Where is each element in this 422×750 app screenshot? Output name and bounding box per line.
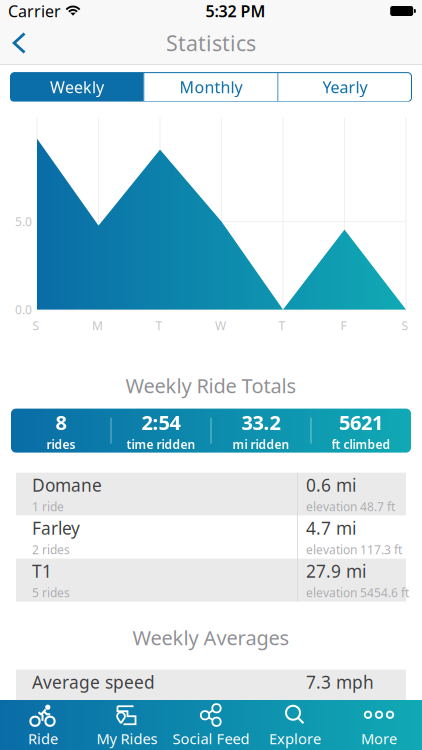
staticText: T — [155, 318, 162, 333]
staticText: F — [340, 318, 346, 333]
staticText: 5.0 — [15, 214, 32, 229]
button[interactable]: My Rides — [85, 700, 169, 750]
staticText: elevation 5454.6 ft — [306, 585, 409, 600]
staticText: 33.2 — [241, 409, 280, 435]
button[interactable]: More — [337, 700, 421, 750]
staticText: W — [215, 318, 226, 333]
staticText: Explore — [269, 729, 321, 748]
staticText: 4.7 mi — [306, 517, 356, 540]
staticText: elevation 117.3 ft — [306, 542, 402, 557]
staticText: Farley — [32, 517, 80, 540]
button[interactable]: Explore — [253, 700, 337, 750]
button[interactable]: Ride — [1, 700, 85, 750]
staticText: elevation 48.7 ft — [306, 499, 395, 514]
staticText: Monthly — [179, 76, 242, 98]
staticText: T1 — [32, 560, 52, 583]
button[interactable]: T1 — [16, 559, 406, 602]
staticText: Statistics — [166, 29, 256, 57]
staticText: 7.3 mph — [306, 671, 374, 694]
staticText: mi ridden — [232, 436, 289, 452]
button[interactable]: Weekly — [10, 73, 143, 102]
button[interactable]: Domane — [16, 473, 406, 516]
staticText: S — [401, 318, 408, 333]
staticText: 2 rides — [32, 542, 70, 557]
staticText: My Rides — [96, 729, 157, 748]
button[interactable]: Social Feed — [169, 700, 253, 750]
staticText: 27.9 mi — [306, 560, 366, 583]
staticText: 5:32 PM — [205, 0, 265, 22]
staticText: Weekly — [50, 76, 104, 98]
staticText: rides — [46, 436, 75, 452]
staticText: 1 ride — [32, 499, 64, 514]
staticText: T — [278, 318, 285, 333]
staticText: Social Feed — [172, 729, 249, 748]
staticText: Carrier — [8, 0, 61, 22]
button[interactable]: Yearly — [278, 73, 411, 102]
button[interactable]: Monthly — [144, 73, 277, 102]
staticText: Weekly Ride Totals — [125, 372, 296, 399]
staticText: 2:54 — [141, 409, 180, 435]
staticText: 5621 — [339, 409, 383, 435]
button[interactable]: Farley — [16, 516, 406, 559]
staticText: M — [92, 318, 103, 333]
staticText: 0.6 mi — [306, 474, 356, 497]
staticText: Domane — [32, 474, 102, 497]
staticText: S — [32, 318, 39, 333]
staticText: ft climbed — [331, 436, 390, 452]
staticText: 0.0 — [15, 302, 32, 317]
staticText: 5 rides — [32, 585, 70, 600]
staticText: Yearly — [322, 76, 367, 98]
staticText: 8 — [55, 409, 66, 435]
staticText: Average speed — [32, 671, 155, 694]
button[interactable]: Back — [0, 22, 38, 64]
staticText: Weekly Averages — [132, 624, 289, 651]
staticText: More — [361, 729, 397, 748]
button[interactable]: Average speed — [16, 670, 406, 713]
staticText: Ride — [28, 729, 58, 748]
staticText: time ridden — [126, 436, 195, 452]
